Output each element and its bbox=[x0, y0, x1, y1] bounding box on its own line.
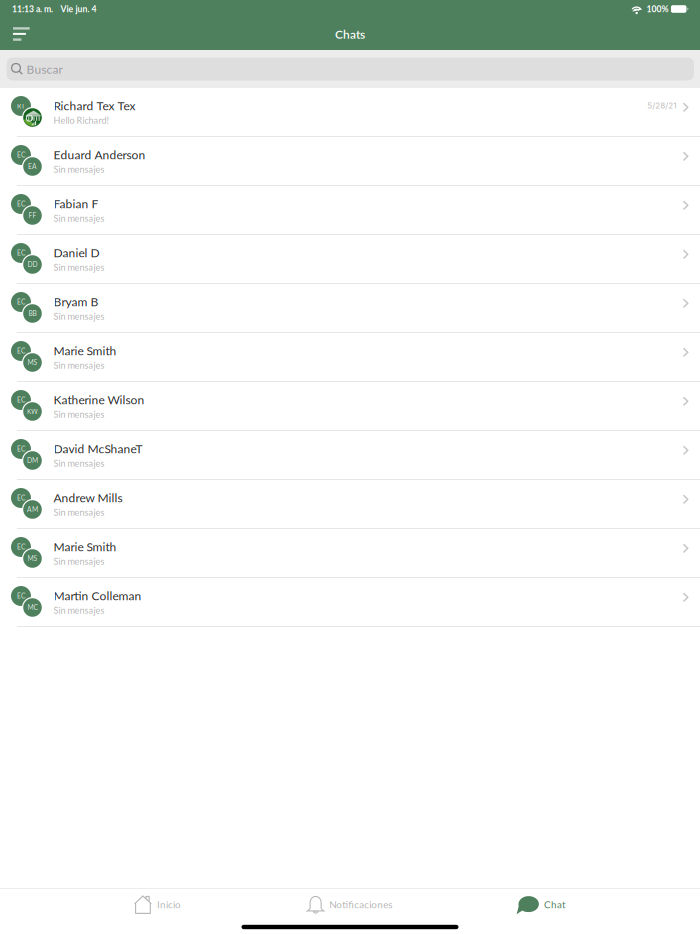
staticText: Marie Smith bbox=[54, 539, 117, 554]
staticText: Sin mensajes bbox=[54, 409, 105, 420]
staticText: MS bbox=[27, 554, 37, 562]
staticText: EC bbox=[17, 347, 25, 355]
staticText: 11:13 a. m. bbox=[12, 4, 53, 14]
staticText: Hello Richard! bbox=[54, 115, 109, 126]
staticText: BB bbox=[28, 309, 36, 317]
button[interactable]: EC bbox=[0, 382, 700, 431]
button[interactable]: EC bbox=[0, 284, 700, 333]
staticText: Katherine Wilson bbox=[54, 392, 145, 407]
staticText: KW bbox=[27, 407, 38, 415]
staticText: Eduard Anderson bbox=[54, 147, 146, 162]
staticText: FF bbox=[28, 211, 36, 219]
button[interactable]: RT bbox=[0, 88, 700, 137]
staticText: Fabian F bbox=[54, 196, 99, 211]
button[interactable]: EC bbox=[0, 235, 700, 284]
staticText: Sin mensajes bbox=[54, 311, 105, 322]
staticText: Sin mensajes bbox=[54, 262, 105, 273]
staticText: Inicio bbox=[157, 899, 181, 910]
button[interactable]: EC bbox=[0, 529, 700, 578]
staticText: DD bbox=[27, 260, 37, 268]
staticText: Andrew Mills bbox=[54, 490, 123, 505]
staticText: DM bbox=[27, 456, 38, 464]
staticText: David McShaneT bbox=[54, 441, 143, 456]
staticText: 100% bbox=[647, 4, 669, 14]
staticText: EC bbox=[17, 249, 25, 257]
staticText: Chats bbox=[335, 27, 365, 41]
button[interactable]: EC bbox=[0, 137, 700, 186]
staticText: Sin mensajes bbox=[54, 458, 105, 469]
staticText: Chat bbox=[544, 899, 566, 910]
button[interactable]: EC bbox=[0, 186, 700, 235]
staticText: Marie Smith bbox=[54, 343, 117, 358]
button[interactable]: Chat bbox=[518, 888, 566, 920]
staticText: Vie jun. 4 bbox=[60, 4, 96, 14]
staticText: Buscar bbox=[26, 62, 62, 76]
button[interactable]: Buscar bbox=[6, 57, 694, 80]
staticText: Notificaciones bbox=[329, 899, 392, 910]
button[interactable]: EC bbox=[0, 333, 700, 382]
staticText: Sin mensajes bbox=[54, 164, 105, 175]
staticText: EC bbox=[17, 151, 25, 159]
button[interactable]: EC bbox=[0, 578, 700, 627]
staticText: Sin mensajes bbox=[54, 605, 105, 616]
button[interactable]: Notificaciones bbox=[307, 888, 392, 920]
staticText: RT bbox=[17, 102, 25, 110]
staticText: EC bbox=[17, 200, 25, 208]
staticText: EC bbox=[17, 298, 25, 306]
staticText: Sin mensajes bbox=[54, 360, 105, 371]
staticText: EA bbox=[28, 162, 37, 170]
staticText: MC bbox=[27, 603, 37, 611]
staticText: Richard Tex Tex bbox=[54, 98, 136, 113]
button[interactable]: Menu bbox=[0, 18, 43, 50]
staticText: AM bbox=[27, 505, 38, 513]
staticText: Sin mensajes bbox=[54, 507, 105, 518]
button[interactable]: EC bbox=[0, 480, 700, 529]
staticText: 5/28/21 bbox=[647, 101, 676, 110]
button[interactable]: Inicio bbox=[134, 888, 181, 920]
staticText: EC bbox=[17, 396, 25, 404]
staticText: EC bbox=[17, 494, 25, 502]
staticText: EC bbox=[17, 543, 25, 551]
staticText: Sin mensajes bbox=[54, 556, 105, 567]
staticText: Daniel D bbox=[54, 245, 100, 260]
staticText: MS bbox=[27, 358, 37, 366]
button[interactable]: EC bbox=[0, 431, 700, 480]
staticText: Martin Colleman bbox=[54, 588, 142, 603]
staticText: Sin mensajes bbox=[54, 213, 105, 224]
staticText: Bryam B bbox=[54, 294, 99, 309]
staticText: EC bbox=[17, 592, 25, 600]
staticText: EC bbox=[17, 445, 25, 453]
